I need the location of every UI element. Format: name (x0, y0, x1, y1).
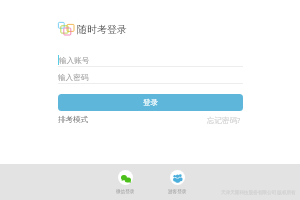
button[interactable]: 忘记密码? (205, 112, 243, 128)
button[interactable]: 输入账号 (58, 54, 243, 67)
staticText: 忘记密码? (207, 115, 241, 125)
staticText: 游客登录 (168, 189, 187, 195)
button[interactable]: 微信登录 (110, 170, 140, 195)
staticText: 排考模式 (58, 115, 88, 124)
staticText: 输入账号 (59, 56, 90, 66)
button[interactable]: 登录 (58, 94, 243, 111)
staticText: 天津天耀科技股份有限公司 版权所有 (221, 189, 296, 195)
staticText: 登录 (143, 98, 158, 107)
button[interactable]: 输入密码 (58, 71, 243, 84)
staticText: 输入密码 (58, 73, 89, 83)
button[interactable]: 游客登录 (162, 170, 192, 195)
button[interactable]: 排考模式 (56, 112, 90, 127)
staticText: 随时考登录 (77, 23, 127, 36)
staticText: 微信登录 (116, 189, 135, 195)
